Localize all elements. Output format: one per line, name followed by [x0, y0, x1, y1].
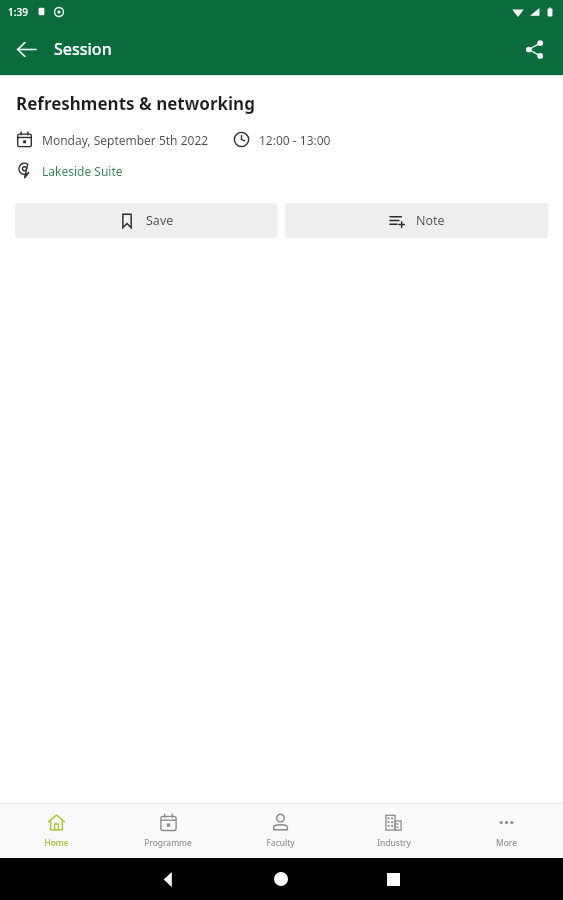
- staticText: Monday, September 5th 2022: [42, 132, 209, 148]
- staticText: Session: [54, 38, 112, 60]
- staticText: 12:00 - 13:00: [259, 132, 331, 148]
- staticText: More: [496, 837, 517, 849]
- button[interactable]: More: [450, 803, 563, 858]
- button[interactable]: Faculty: [224, 803, 337, 858]
- staticText: Industry: [377, 837, 411, 849]
- staticText: 1:39: [8, 5, 28, 19]
- button[interactable]: Back: [6, 29, 46, 69]
- button[interactable]: Programme: [112, 803, 224, 858]
- staticText: Faculty: [266, 837, 295, 849]
- staticText: Programme: [144, 837, 192, 849]
- button[interactable]: Save: [15, 203, 277, 238]
- staticText: Lakeside Suite: [42, 163, 123, 179]
- button[interactable]: Lakeside Suite: [16, 162, 563, 179]
- button[interactable]: Share: [513, 28, 555, 70]
- button[interactable]: Industry: [337, 803, 450, 858]
- staticText: Home: [44, 837, 69, 849]
- staticText: Save: [146, 212, 174, 229]
- button[interactable]: Note: [285, 203, 548, 238]
- button[interactable]: Home: [0, 803, 112, 858]
- staticText: Refreshments & networking: [16, 92, 255, 115]
- staticText: Note: [416, 212, 445, 229]
